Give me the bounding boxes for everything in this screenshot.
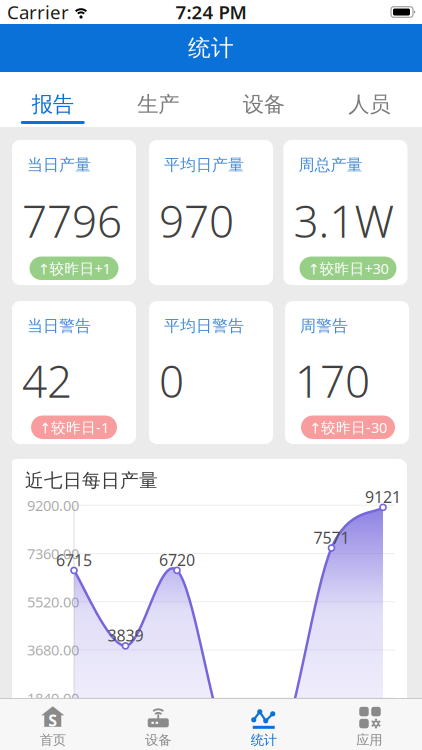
- staticText: ↑较昨日-1: [39, 417, 109, 437]
- staticText: 970: [159, 191, 234, 250]
- button[interactable]: 设备: [211, 72, 316, 127]
- staticText: 0: [159, 351, 184, 410]
- staticText: 统计: [188, 34, 234, 62]
- staticText: 3680.00: [27, 640, 79, 660]
- staticText: 周警告: [300, 316, 348, 336]
- staticText: 近七日每日产量: [25, 469, 158, 492]
- staticText: 应用: [356, 732, 382, 748]
- staticText: 设备: [243, 91, 285, 118]
- button[interactable]: 报告: [0, 72, 105, 127]
- staticText: 6715: [56, 549, 92, 570]
- staticText: 7360.00: [27, 544, 79, 563]
- staticText: ↑较昨日+30: [307, 258, 388, 278]
- staticText: 首页: [40, 732, 66, 748]
- staticText: Carrier: [7, 0, 69, 24]
- staticText: 生产: [137, 91, 179, 118]
- button[interactable]: 设备: [105, 703, 211, 750]
- staticText: 5520.00: [27, 592, 79, 611]
- button[interactable]: 统计: [211, 703, 316, 750]
- staticText: S: [48, 710, 57, 731]
- staticText: 1840.00: [27, 688, 79, 708]
- staticText: 当日产量: [27, 155, 91, 175]
- staticText: 人员: [348, 91, 390, 118]
- staticText: 9200.00: [27, 496, 79, 515]
- staticText: 当日警告: [27, 316, 91, 336]
- button[interactable]: 应用: [316, 703, 422, 750]
- staticText: 报告: [32, 91, 74, 118]
- button[interactable]: S: [0, 703, 105, 750]
- staticText: 6720: [159, 549, 195, 570]
- button[interactable]: 人员: [316, 72, 422, 127]
- button[interactable]: 生产: [105, 72, 211, 127]
- staticText: 42: [22, 351, 72, 410]
- staticText: ↑较昨日+1: [37, 258, 110, 278]
- staticText: 平均日产量: [164, 155, 244, 175]
- staticText: 3.1W: [293, 191, 394, 250]
- staticText: 170: [295, 351, 370, 410]
- staticText: 统计: [251, 732, 277, 748]
- staticText: 9121: [365, 486, 401, 507]
- staticText: 7796: [22, 191, 122, 250]
- staticText: 3839: [107, 625, 143, 646]
- staticText: ↑较昨日-30: [309, 417, 387, 437]
- staticText: 7:24 PM: [175, 0, 246, 24]
- staticText: 周总产量: [298, 155, 362, 175]
- staticText: 7571: [313, 527, 349, 548]
- staticText: 平均日警告: [164, 316, 244, 336]
- staticText: 设备: [145, 732, 171, 748]
